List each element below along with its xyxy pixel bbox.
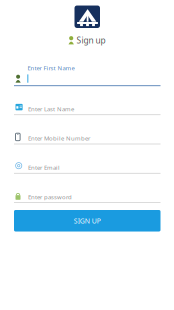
staticText: SIGN UP [74,216,101,225]
staticText: Enter Mobile Number [28,134,90,142]
button[interactable]: Enter Email [14,151,160,175]
button[interactable]: Enter First Name [14,63,160,87]
staticText: Enter password [28,193,72,201]
staticText: Enter First Name [27,64,74,72]
staticText: Enter Last Name [28,105,74,113]
button[interactable]: Enter Last Name [14,92,160,116]
staticText: Enter Email [28,163,60,172]
button[interactable]: Enter Mobile Number [14,122,160,146]
staticText: Sign up [76,34,105,46]
button[interactable]: Enter password [14,180,160,204]
button[interactable]: SIGN UP [14,210,160,231]
